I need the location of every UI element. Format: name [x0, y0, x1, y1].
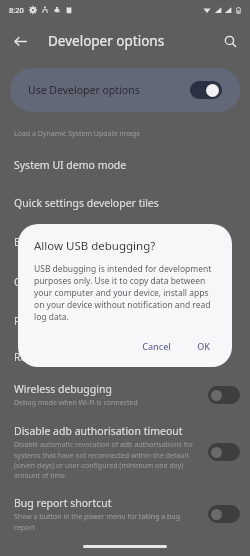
staticText: Allow USB debugging?	[34, 238, 156, 254]
button[interactable]: Back	[4, 25, 36, 57]
staticText: USB debugging is intended for developmen…	[34, 263, 218, 323]
staticText: Wireless debugging	[14, 382, 112, 396]
staticText: Disable automatic revocation of adb auth…	[14, 440, 200, 480]
button[interactable]: On	[190, 81, 222, 99]
button[interactable]: Off	[208, 505, 240, 523]
button[interactable]: OK	[189, 335, 218, 357]
button[interactable]: Wireless debugging	[0, 374, 250, 416]
staticText: System UI demo mode	[14, 158, 127, 172]
button[interactable]: Off	[208, 443, 240, 461]
button[interactable]: Enable Bluetooth HCI snoop log	[0, 222, 250, 262]
button[interactable]: Cancel	[134, 335, 179, 357]
button[interactable]: Search	[215, 26, 245, 56]
staticText: Running services	[14, 314, 98, 328]
button[interactable]: System UI demo mode	[0, 146, 250, 184]
button[interactable]: Bug report shortcut	[0, 488, 250, 540]
staticText: Use Developer options	[28, 83, 190, 97]
staticText: 8:20	[9, 5, 24, 15]
staticText: Enable Bluetooth HCI snoop log	[14, 235, 172, 249]
staticText: OK	[197, 340, 210, 352]
staticText: Bug report shortcut	[14, 496, 112, 510]
button[interactable]: Use Developer options	[10, 68, 240, 112]
button[interactable]: Revoke USB debugging authorisations	[0, 340, 250, 374]
button[interactable]: Load a Dynamic System Update image	[0, 122, 250, 146]
button[interactable]: Disable adb authorisation timeout	[0, 416, 250, 488]
staticText: Cancel	[142, 340, 171, 352]
staticText: Disable adb authorisation timeout	[14, 424, 183, 438]
staticText: Show a button in the power menu for taki…	[14, 512, 200, 532]
button[interactable]: Running services	[0, 302, 250, 340]
button[interactable]: OEM unlocking	[0, 262, 250, 302]
button[interactable]: Off	[208, 386, 240, 404]
staticText: Debug mode when Wi-Fi is connected	[14, 398, 138, 408]
staticText: Load a Dynamic System Update image	[14, 129, 141, 139]
staticText: OEM unlocking	[14, 275, 89, 289]
button[interactable]: Quick settings developer tiles	[0, 184, 250, 222]
staticText: Quick settings developer tiles	[14, 196, 159, 210]
staticText: Developer options	[48, 32, 165, 50]
staticText: Revoke USB debugging authorisations	[14, 350, 204, 364]
